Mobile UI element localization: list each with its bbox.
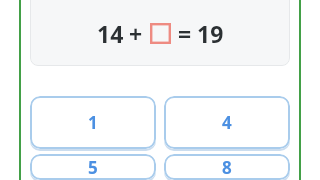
staticText: 19 bbox=[197, 18, 224, 49]
button[interactable]: 8 bbox=[164, 154, 290, 180]
staticText: 5 bbox=[88, 156, 98, 179]
staticText: 4 bbox=[222, 111, 232, 134]
staticText: + bbox=[129, 18, 143, 49]
staticText: 8 bbox=[222, 156, 232, 179]
staticText: 1 bbox=[88, 111, 98, 134]
button[interactable]: 1 bbox=[30, 96, 156, 149]
staticText: = bbox=[178, 18, 192, 49]
button[interactable]: 5 bbox=[30, 154, 156, 180]
button[interactable]: 14 bbox=[30, 0, 290, 66]
button[interactable]: 4 bbox=[164, 96, 290, 149]
staticText: 14 bbox=[97, 18, 124, 49]
